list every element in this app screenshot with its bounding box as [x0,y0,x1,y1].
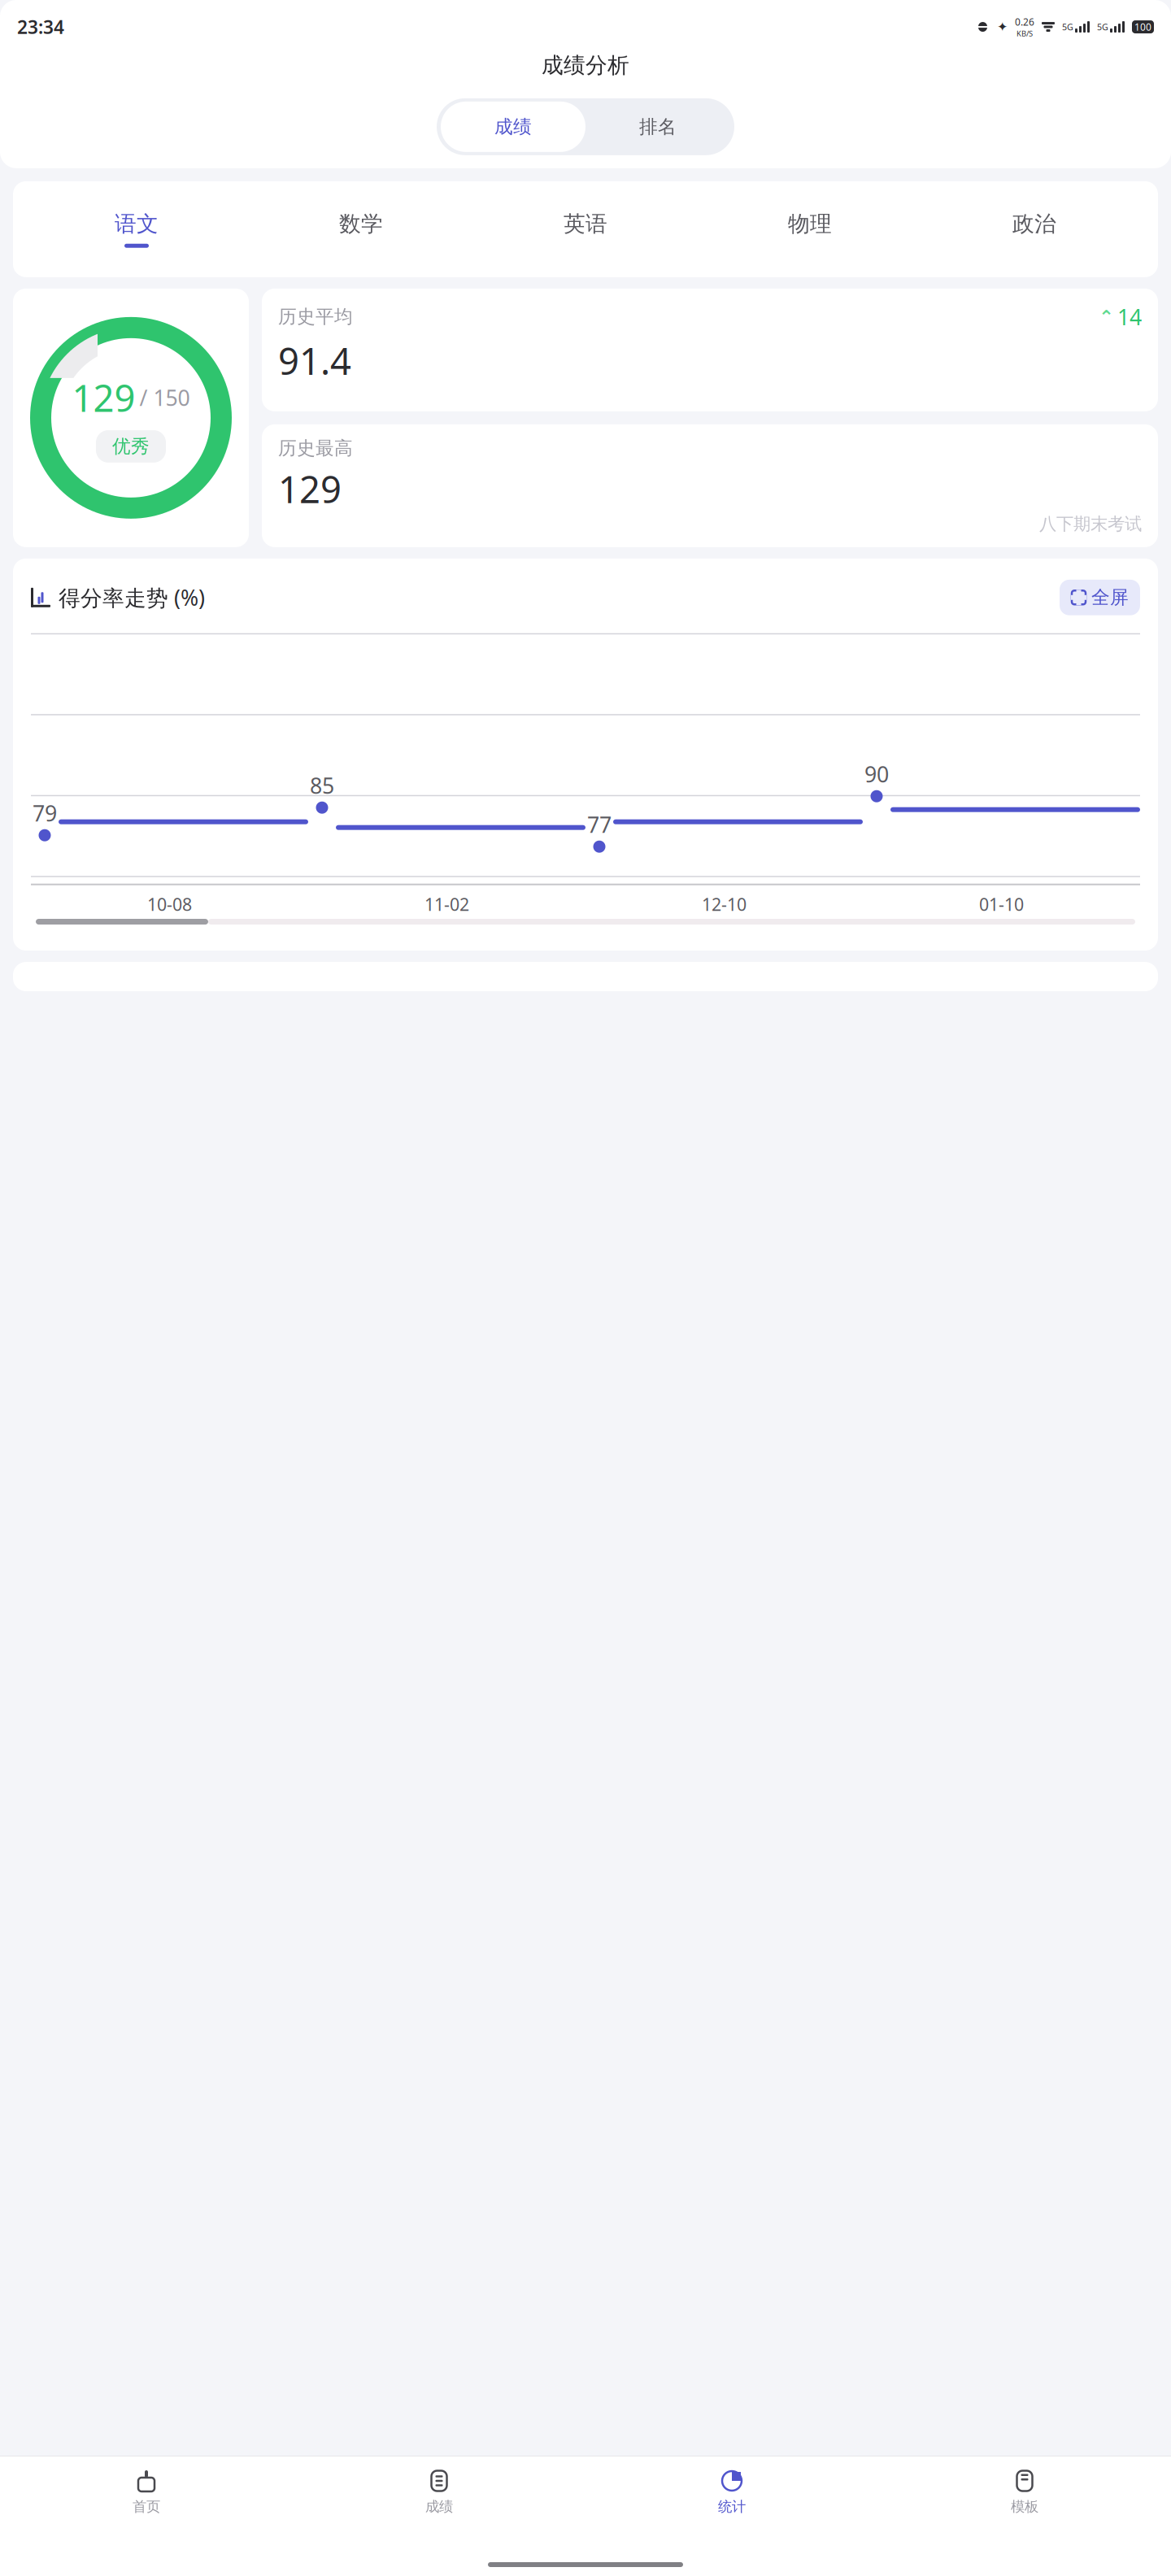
staticText: 统计 [718,2498,746,2515]
staticText: / 150 [139,383,190,412]
button[interactable]: 英语 [473,211,698,248]
staticText: 物理 [788,211,832,237]
staticText: 历史最高 [278,437,353,459]
staticText: 数学 [339,211,383,237]
staticText: KB/S [1016,28,1033,38]
staticText: 排名 [639,115,677,138]
staticText: 成绩分析 [542,52,629,79]
staticText: 129 [278,464,342,513]
staticText: 历史平均 [278,305,353,328]
staticText: 14 [1117,302,1142,331]
staticText: 首页 [133,2498,160,2515]
staticText: 5G [1097,21,1108,33]
staticText: 79 [33,799,57,828]
button[interactable]: 物理 [698,211,922,248]
button[interactable]: 成绩 [293,2468,585,2517]
staticText: 91.4 [278,336,351,385]
button[interactable]: 成绩 [441,102,585,152]
staticText: 成绩 [425,2498,453,2515]
staticText: 01-10 [979,893,1024,916]
staticText: 77 [587,810,612,839]
staticText: 得分率走势 (%) [59,583,205,612]
staticText: 八下期末考试 [1039,513,1142,535]
button[interactable]: 政治 [922,211,1147,248]
staticText: 成绩 [494,115,532,138]
staticText: ✦ [997,20,1008,34]
button[interactable]: 首页 [0,2468,293,2517]
button[interactable]: 排名 [585,102,730,152]
staticText: 85 [310,771,334,800]
staticText: 政治 [1012,211,1056,237]
staticText: 优秀 [112,435,150,458]
button[interactable]: 统计 [585,2468,878,2517]
staticText: 全屏 [1091,586,1129,609]
staticText: ⌃ [1099,306,1114,327]
staticText: 0.26 [1015,15,1034,28]
staticText: 英语 [564,211,607,237]
staticText: 语文 [115,211,159,237]
staticText: 模板 [1011,2498,1038,2515]
button[interactable]: 全屏 [1060,580,1140,615]
staticText: 11-02 [424,893,469,916]
staticText: 12-10 [702,893,747,916]
staticText: 100 [1134,20,1151,33]
staticText: 10-08 [147,893,192,916]
staticText: 23:34 [17,15,64,39]
button[interactable]: 语文 [24,211,249,248]
staticText: 90 [864,760,889,788]
button[interactable]: 模板 [878,2468,1171,2517]
button[interactable]: 数学 [249,211,473,248]
staticText: 129 [72,373,135,422]
staticText: 5G [1062,21,1073,33]
